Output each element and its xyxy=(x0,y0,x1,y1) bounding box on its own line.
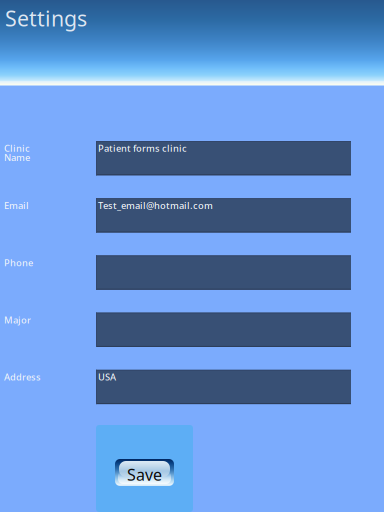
staticText: Major xyxy=(4,314,31,326)
staticText: Patient forms clinic xyxy=(98,142,187,154)
button[interactable]: Test_email@hotmail.com xyxy=(96,198,351,232)
staticText: Save xyxy=(127,464,162,485)
button[interactable]: Patient forms clinic xyxy=(96,141,351,175)
button[interactable] xyxy=(96,255,351,290)
button[interactable] xyxy=(96,313,351,347)
staticText: Address xyxy=(4,371,41,383)
staticText: USA xyxy=(98,371,116,383)
button[interactable]: Save xyxy=(115,459,174,486)
staticText: Test_email@hotmail.com xyxy=(98,199,213,212)
staticText: Email xyxy=(4,199,29,212)
staticText: Name xyxy=(4,151,30,164)
button[interactable]: USA xyxy=(96,370,351,404)
staticText: Clinic xyxy=(4,142,30,154)
staticText: Settings xyxy=(5,4,87,32)
staticText: Phone xyxy=(4,256,33,269)
